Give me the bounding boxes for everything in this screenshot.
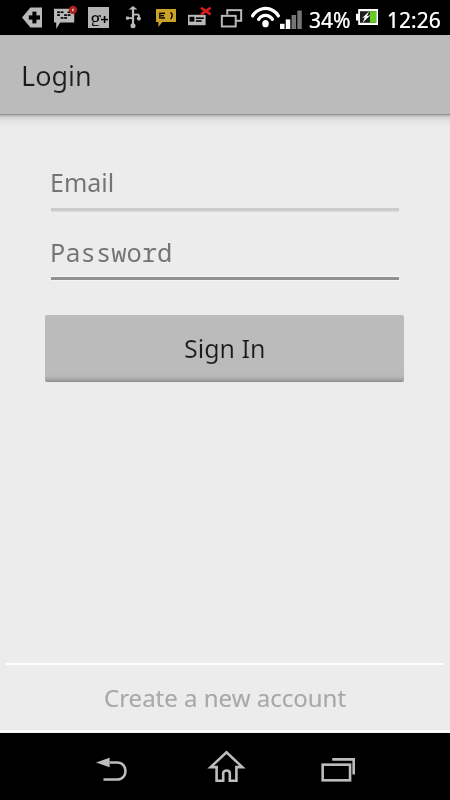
button[interactable]: Home (188, 733, 263, 800)
button[interactable]: Recent apps (300, 733, 375, 800)
staticText: Email (50, 165, 115, 199)
staticText: Create a new account (104, 681, 347, 714)
staticText: 34% (309, 6, 351, 35)
staticText: 12:26 (387, 6, 441, 35)
staticText: Login (21, 57, 92, 94)
button[interactable]: Back (75, 733, 150, 800)
button[interactable]: Create a new account (0, 666, 450, 733)
staticText: Password (50, 235, 173, 270)
staticText: Sign In (184, 331, 266, 365)
button[interactable]: Sign In (45, 315, 404, 382)
staticText: g (90, 5, 102, 26)
